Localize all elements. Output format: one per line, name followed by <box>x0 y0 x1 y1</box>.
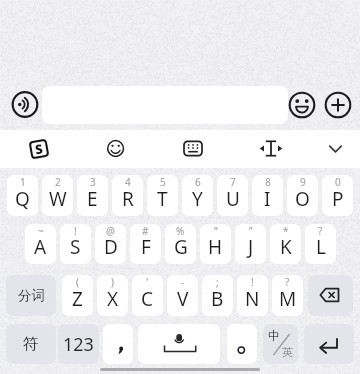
staticText: 分词 <box>18 287 45 304</box>
staticText: A <box>34 234 47 260</box>
button[interactable] <box>304 324 354 364</box>
staticText: G <box>174 234 188 260</box>
staticText: % <box>176 224 185 238</box>
button[interactable]: ! <box>237 275 268 316</box>
staticText: ' <box>146 275 149 289</box>
staticText: ! <box>251 275 254 289</box>
staticText: S <box>70 234 81 260</box>
button[interactable]: 1 <box>7 175 38 216</box>
staticText: ( <box>76 275 79 289</box>
staticText: M <box>279 286 297 312</box>
staticText: T <box>157 186 168 212</box>
button[interactable]: 符 <box>6 324 56 364</box>
button[interactable]: 9 <box>287 175 318 216</box>
button[interactable]: 0 <box>322 175 353 216</box>
button[interactable]: “ <box>200 224 231 264</box>
staticText: S <box>33 139 44 158</box>
staticText: H <box>208 234 223 260</box>
button[interactable] <box>103 324 133 364</box>
button[interactable]: ~ <box>25 224 56 264</box>
staticText: C <box>141 286 154 312</box>
staticText: O <box>295 186 310 212</box>
staticText: * <box>283 224 289 238</box>
button[interactable] <box>286 89 318 121</box>
staticText: “ <box>214 224 218 238</box>
button[interactable]: 中 <box>263 324 298 364</box>
staticText: Z <box>72 286 83 312</box>
staticText: Q <box>15 186 30 212</box>
button[interactable]: # <box>130 224 161 264</box>
staticText: ? <box>285 275 290 289</box>
button[interactable]: % <box>165 224 196 264</box>
staticText: R <box>122 186 134 212</box>
button[interactable] <box>249 130 292 168</box>
staticText: V <box>177 286 189 312</box>
staticText: 符 <box>23 334 39 354</box>
staticText: J <box>248 234 254 260</box>
button[interactable]: @ <box>95 224 126 264</box>
staticText: 1 <box>20 175 26 189</box>
staticText: L <box>316 234 326 260</box>
button[interactable]: 3 <box>77 175 108 216</box>
staticText: U <box>226 186 240 212</box>
button[interactable] <box>227 324 257 364</box>
staticText: 中 <box>268 328 280 343</box>
button[interactable]: 4 <box>112 175 143 216</box>
staticText: 3 <box>90 175 96 189</box>
staticText: X <box>107 286 119 312</box>
button[interactable]: ; <box>202 275 233 316</box>
button[interactable]: 7 <box>217 175 248 216</box>
staticText: ; <box>216 275 219 289</box>
button[interactable]: ( <box>62 275 93 316</box>
staticText: ” <box>249 224 253 238</box>
button[interactable]: ? <box>272 275 303 316</box>
staticText: K <box>280 234 292 260</box>
staticText: D <box>104 234 118 260</box>
button[interactable]: ? <box>305 224 336 264</box>
staticText: 4 <box>125 175 131 189</box>
staticText: ! <box>74 224 77 238</box>
staticText: ) <box>111 275 114 289</box>
staticText: N <box>245 286 260 312</box>
button[interactable]: 6 <box>182 175 213 216</box>
button[interactable] <box>138 324 220 364</box>
button[interactable]: S <box>17 130 60 168</box>
staticText: 7 <box>230 175 236 189</box>
button[interactable]: - <box>167 275 198 316</box>
button[interactable]: 8 <box>252 175 283 216</box>
button[interactable]: ! <box>60 224 91 264</box>
button[interactable]: 5 <box>147 175 178 216</box>
button[interactable]: 分词 <box>6 275 56 316</box>
button[interactable]: ” <box>235 224 266 264</box>
button[interactable]: * <box>270 224 301 264</box>
staticText: 123 <box>63 332 94 357</box>
staticText: # <box>142 224 149 238</box>
button[interactable]: ) <box>97 275 128 316</box>
staticText: 0 <box>335 175 341 189</box>
button[interactable]: 123 <box>58 324 99 364</box>
button[interactable] <box>322 89 354 121</box>
staticText: 9 <box>300 175 306 189</box>
staticText: 英 <box>282 345 293 359</box>
button[interactable] <box>94 130 137 168</box>
button[interactable] <box>171 130 214 168</box>
staticText: Y <box>192 186 203 212</box>
staticText: @ <box>106 224 115 238</box>
staticText: ? <box>318 224 323 238</box>
button[interactable] <box>8 87 42 121</box>
staticText: - <box>181 275 185 289</box>
staticText: I <box>264 186 271 212</box>
button[interactable] <box>308 275 353 316</box>
staticText: F <box>141 234 151 260</box>
staticText: 2 <box>55 175 61 189</box>
staticText: 8 <box>265 175 271 189</box>
staticText: P <box>332 186 344 212</box>
button[interactable] <box>314 130 357 168</box>
button[interactable]: 2 <box>42 175 73 216</box>
staticText: 6 <box>195 175 201 189</box>
staticText: 5 <box>160 175 166 189</box>
button[interactable]: ' <box>132 275 163 316</box>
staticText: ~ <box>38 224 44 238</box>
staticText: W <box>49 186 67 212</box>
